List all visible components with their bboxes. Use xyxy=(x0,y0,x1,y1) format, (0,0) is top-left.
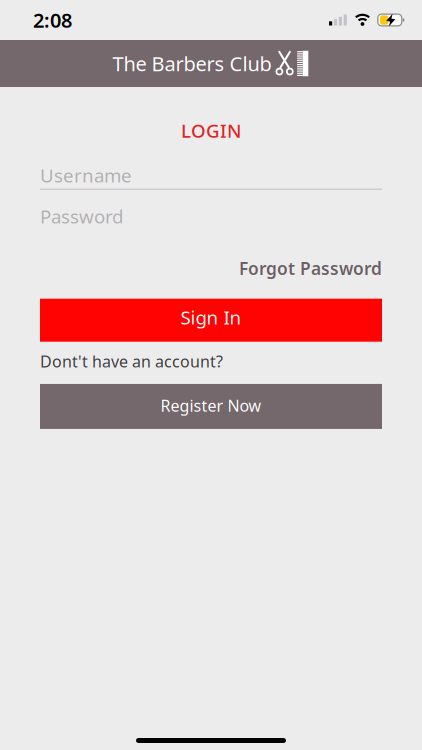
staticText: The Barbers Club xyxy=(112,50,271,77)
staticText: Password xyxy=(40,204,123,229)
button[interactable]: Register Now xyxy=(40,384,382,429)
staticText: 2:08 xyxy=(33,7,72,33)
staticText: Sign In xyxy=(180,305,241,330)
button[interactable]: Password xyxy=(40,204,382,229)
staticText: Username xyxy=(40,163,132,188)
staticText: Dont't have an account? xyxy=(40,351,223,372)
staticText: LOGIN xyxy=(181,118,241,143)
button[interactable]: Sign In xyxy=(40,299,382,342)
staticText: Forgot Password xyxy=(239,257,382,280)
button[interactable]: Username xyxy=(40,163,382,190)
staticText: Register Now xyxy=(160,395,261,416)
button[interactable]: Forgot Password xyxy=(239,257,382,280)
